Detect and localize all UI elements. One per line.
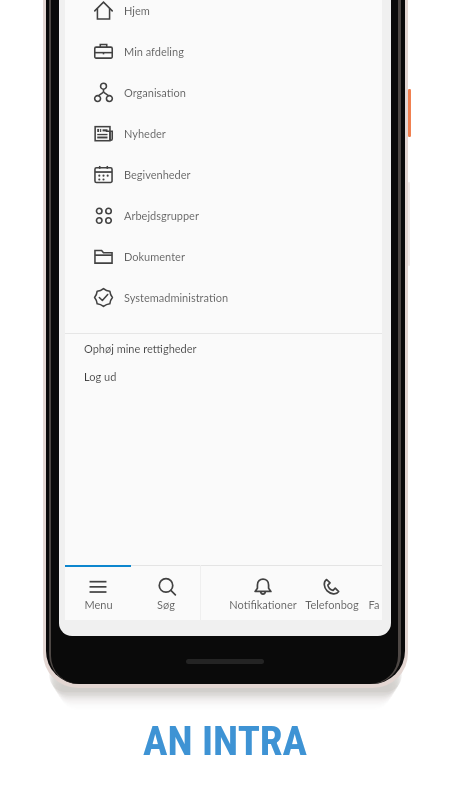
staticText: Nyheder xyxy=(124,127,166,140)
other: Notifikationer xyxy=(254,577,272,595)
staticText: Arbejdsgrupper xyxy=(124,209,199,222)
staticText: Telefonbog xyxy=(305,598,359,611)
button[interactable]: Begivenheder xyxy=(65,154,382,195)
staticText: Begivenheder xyxy=(124,168,191,181)
staticText: Min afdeling xyxy=(124,45,184,58)
button[interactable]: Arbejdsgrupper xyxy=(65,195,382,236)
button[interactable]: Notifikationer xyxy=(228,565,297,620)
staticText: Hjem xyxy=(124,4,150,17)
button[interactable]: Favoritter xyxy=(366,565,382,620)
staticText: Søg xyxy=(157,598,175,611)
staticText: Log ud xyxy=(84,370,117,383)
button[interactable]: Ophøj mine rettigheder xyxy=(65,334,382,362)
button[interactable]: Nyheder xyxy=(65,113,382,154)
other: Søg xyxy=(157,577,175,595)
button[interactable]: Log ud xyxy=(65,362,382,390)
staticText: Systemadministration xyxy=(124,291,229,304)
other: Telefonbog xyxy=(323,577,341,595)
button[interactable]: Menu xyxy=(65,565,131,620)
staticText: Ophøj mine rettigheder xyxy=(84,342,197,355)
staticText: Notifikationer xyxy=(229,598,297,611)
staticText: Dokumenter xyxy=(124,250,185,263)
button[interactable]: Organisation xyxy=(65,72,382,113)
button[interactable]: Systemadministration xyxy=(65,277,382,318)
staticText: Menu xyxy=(84,598,113,611)
staticText: AN INTRA xyxy=(143,717,308,765)
button[interactable]: Søg xyxy=(131,565,200,620)
button[interactable]: Dokumenter xyxy=(65,236,382,277)
staticText: Favoritter xyxy=(366,598,382,611)
button[interactable]: Telefonbog xyxy=(297,565,366,620)
button[interactable]: Hjem xyxy=(65,0,382,31)
staticText: Organisation xyxy=(124,86,186,99)
button[interactable]: Min afdeling xyxy=(65,31,382,72)
other: Menu xyxy=(89,577,107,595)
